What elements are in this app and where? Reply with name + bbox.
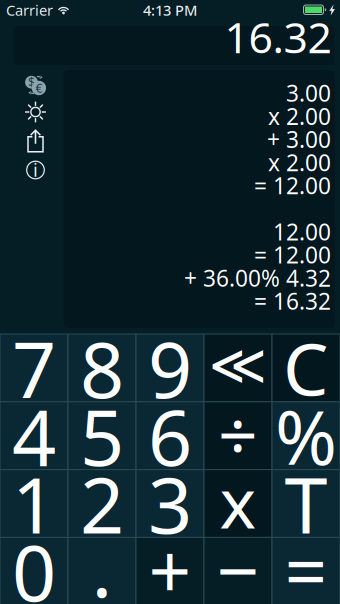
staticText: 5 bbox=[80, 384, 124, 487]
staticText: 3.00 bbox=[286, 78, 331, 108]
staticText: 9 bbox=[148, 317, 192, 419]
button[interactable]: x bbox=[204, 470, 272, 537]
staticText: + 36.00% 4.32 bbox=[184, 263, 331, 293]
button[interactable]: 0 bbox=[0, 537, 68, 604]
staticText: x 2.00 bbox=[268, 101, 331, 131]
staticText: x bbox=[219, 455, 256, 548]
staticText: 2 bbox=[80, 452, 124, 555]
staticText: i bbox=[33, 157, 38, 182]
staticText: 4 bbox=[12, 384, 56, 487]
button[interactable]: C bbox=[272, 334, 340, 402]
staticText: = 16.32 bbox=[254, 286, 331, 316]
staticText: = 12.00 bbox=[254, 240, 331, 270]
staticText: − bbox=[216, 520, 259, 604]
staticText: = bbox=[284, 520, 327, 604]
button[interactable]: = bbox=[272, 537, 340, 604]
button[interactable]: 3 bbox=[136, 470, 204, 537]
staticText: ÷ bbox=[218, 388, 258, 480]
button[interactable]: Information bbox=[10, 156, 60, 184]
button[interactable]: − bbox=[204, 537, 272, 604]
button[interactable]: 8 bbox=[68, 334, 136, 402]
staticText: + 3.00 bbox=[267, 124, 331, 154]
staticText: ≪ bbox=[208, 333, 267, 397]
staticText: $ bbox=[28, 74, 35, 90]
button[interactable]: 6 bbox=[136, 402, 204, 470]
button[interactable]: 9 bbox=[136, 334, 204, 402]
staticText bbox=[325, 193, 331, 224]
staticText: 7 bbox=[12, 317, 56, 419]
staticText: . bbox=[91, 516, 112, 604]
button[interactable]: % bbox=[272, 402, 340, 470]
staticText: 4:13 PM bbox=[143, 0, 197, 20]
button[interactable]: 1 bbox=[0, 470, 68, 537]
staticText: 0 bbox=[12, 520, 56, 604]
button[interactable]: Brightness bbox=[10, 98, 60, 126]
staticText: Carrier bbox=[6, 0, 53, 20]
staticText: 12.00 bbox=[273, 217, 331, 247]
button[interactable]: . bbox=[68, 537, 136, 604]
staticText: € bbox=[35, 80, 42, 96]
button[interactable]: 7 bbox=[0, 334, 68, 402]
staticText: % bbox=[275, 386, 337, 485]
button[interactable]: ÷ bbox=[204, 402, 272, 470]
staticText: 16.32 bbox=[224, 8, 331, 65]
staticText: + bbox=[148, 520, 191, 604]
button[interactable]: Currency conversion bbox=[10, 72, 60, 98]
staticText: = 12.00 bbox=[254, 170, 331, 200]
staticText: 8 bbox=[80, 317, 124, 419]
button[interactable]: 5 bbox=[68, 402, 136, 470]
button[interactable]: T bbox=[272, 470, 340, 537]
button[interactable]: 4 bbox=[0, 402, 68, 470]
button[interactable]: 2 bbox=[68, 470, 136, 537]
staticText: 3 bbox=[148, 452, 192, 555]
staticText: x 2.00 bbox=[268, 147, 331, 177]
staticText: 6 bbox=[148, 384, 192, 487]
staticText: T bbox=[284, 452, 327, 555]
button[interactable]: Share bbox=[10, 126, 60, 156]
staticText: 1 bbox=[12, 452, 56, 555]
button[interactable]: ≪ bbox=[204, 334, 272, 402]
button[interactable]: + bbox=[136, 537, 204, 604]
staticText: C bbox=[283, 320, 329, 416]
